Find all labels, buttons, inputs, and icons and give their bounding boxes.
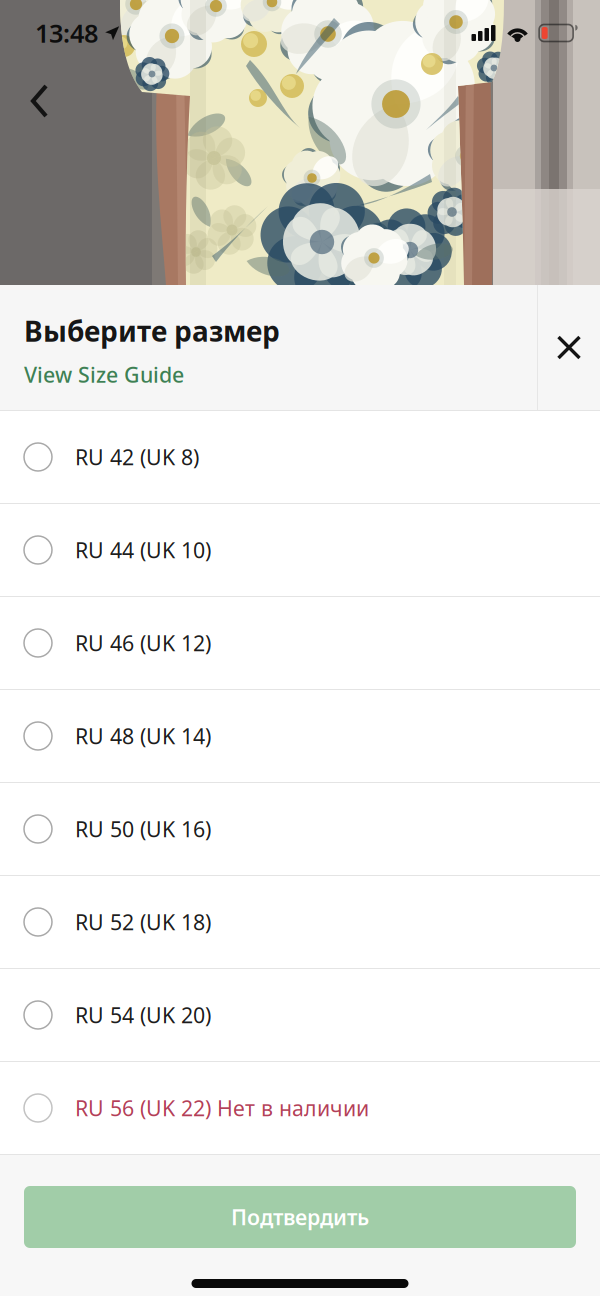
staticText: RU 52 (UK 18) (75, 908, 211, 936)
button[interactable]: Подтвердить (24, 1186, 576, 1248)
button[interactable]: Back (0, 66, 66, 126)
staticText: RU 50 (UK 16) (75, 815, 211, 843)
button[interactable]: View Size Guide (24, 360, 184, 389)
button[interactable]: RU 50 (UK 16) (0, 783, 600, 875)
staticText: RU 42 (UK 8) (75, 443, 199, 471)
staticText: RU 46 (UK 12) (75, 629, 211, 657)
staticText: 13:48 (35, 16, 98, 50)
button[interactable]: RU 42 (UK 8) (0, 411, 600, 503)
button[interactable]: RU 54 (UK 20) (0, 969, 600, 1061)
button[interactable]: RU 48 (UK 14) (0, 690, 600, 782)
button[interactable]: Close (538, 285, 600, 410)
staticText: RU 48 (UK 14) (75, 722, 211, 750)
staticText: View Size Guide (24, 360, 184, 389)
staticText: RU 56 (UK 22) Нет в наличии (75, 1094, 369, 1122)
button[interactable]: RU 56 (UK 22) Нет в наличии (0, 1062, 600, 1154)
staticText: RU 44 (UK 10) (75, 536, 211, 564)
staticText: Выберите размер (24, 312, 280, 349)
button[interactable]: RU 44 (UK 10) (0, 504, 600, 596)
staticText: RU 54 (UK 20) (75, 1001, 211, 1029)
button[interactable]: RU 46 (UK 12) (0, 597, 600, 689)
staticText: Подтвердить (231, 1203, 369, 1231)
button[interactable]: RU 52 (UK 18) (0, 876, 600, 968)
